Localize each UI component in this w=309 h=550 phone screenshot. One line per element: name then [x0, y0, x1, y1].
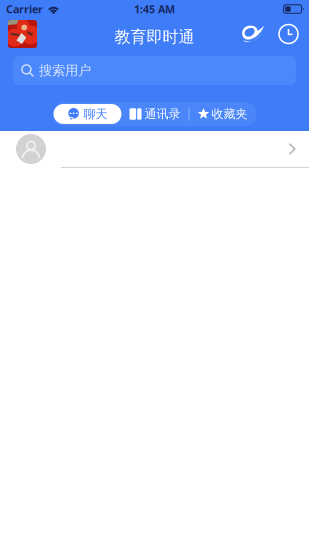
button[interactable]: 聊天 [53, 104, 121, 124]
staticText: 通讯录 [144, 107, 180, 121]
button[interactable]: 通讯录 [121, 103, 188, 125]
button[interactable]: Recents [270, 18, 309, 56]
button[interactable] [0, 131, 309, 168]
staticText: 1:45 AM [134, 2, 175, 16]
staticText: 收藏夹 [211, 107, 247, 121]
button[interactable]: Brand [236, 18, 270, 56]
staticText: 聊天 [83, 107, 107, 121]
staticText: 搜索用户 [39, 62, 91, 79]
button[interactable]: 收藏夹 [189, 103, 255, 125]
button[interactable]: Profile [0, 18, 43, 56]
button[interactable]: 搜索用户 [13, 56, 296, 85]
staticText: Carrier [6, 2, 43, 16]
staticText: 教育即时通 [114, 27, 194, 47]
